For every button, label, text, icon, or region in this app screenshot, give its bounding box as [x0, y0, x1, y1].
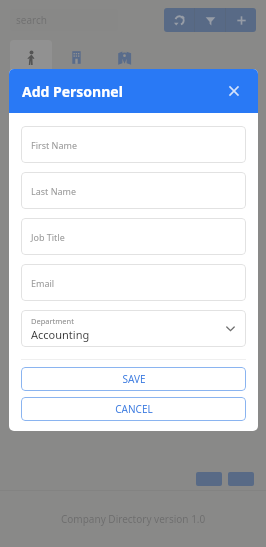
button[interactable]: Refresh: [164, 8, 194, 32]
button[interactable]: Close: [223, 80, 245, 102]
button[interactable]: Filter: [195, 8, 225, 32]
button[interactable]: Email: [21, 264, 246, 301]
staticText: Job Title: [31, 231, 65, 243]
staticText: Email: [31, 277, 55, 289]
staticText: Last Name: [31, 185, 77, 197]
staticText: SAVE: [122, 372, 146, 386]
staticText: Department: [31, 316, 74, 326]
button[interactable]: Job Title: [21, 218, 246, 255]
button[interactable]: Companies: [52, 40, 100, 74]
button[interactable]: CANCEL: [21, 397, 246, 421]
button[interactable]: Add: [226, 8, 256, 32]
button[interactable]: Delete: [228, 472, 254, 486]
staticText: Company Directory version 1.0: [61, 512, 206, 526]
button[interactable]: Last Name: [21, 172, 246, 209]
staticText: Accounting: [31, 327, 90, 342]
staticText: CANCEL: [115, 402, 153, 416]
staticText: search: [16, 13, 47, 27]
button[interactable]: SAVE: [21, 367, 246, 391]
button[interactable]: First Name: [21, 126, 246, 163]
button[interactable]: search: [10, 9, 118, 31]
button[interactable]: Edit: [196, 472, 222, 486]
button[interactable]: Locations: [100, 40, 148, 74]
button[interactable]: People: [10, 40, 52, 74]
button[interactable]: [0, 0, 266, 547]
staticText: Add Personnel: [22, 82, 123, 101]
staticText: First Name: [31, 139, 77, 151]
button[interactable]: Department: [21, 310, 246, 347]
